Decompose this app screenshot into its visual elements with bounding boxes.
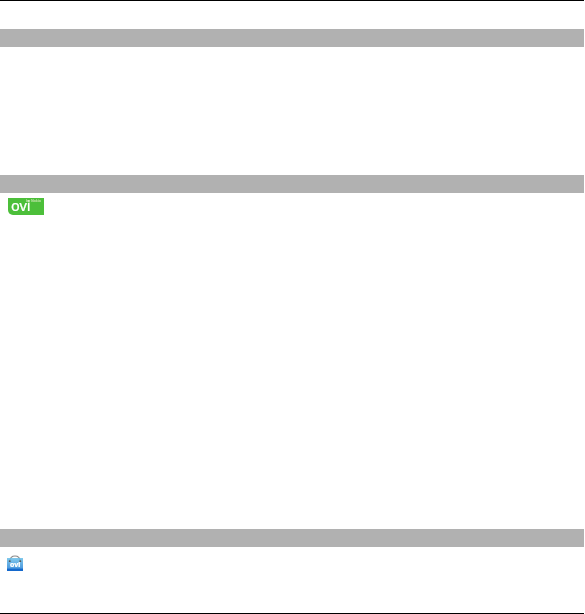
staticText: ovi [11,198,31,212]
button[interactable]: ovi [8,198,44,215]
staticText: by Nokia [26,198,41,203]
staticText: ovi [10,560,21,570]
button[interactable]: Ovi Store [7,554,23,571]
